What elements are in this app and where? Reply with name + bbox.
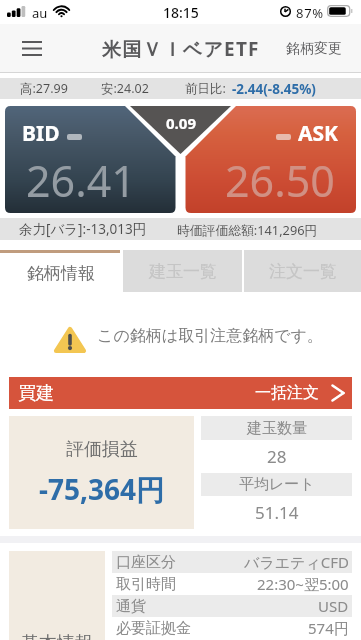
staticText: 銘柄変更 (286, 40, 342, 58)
staticText: 平均レート (239, 475, 315, 494)
staticText: 建玉数量 (247, 419, 307, 438)
staticText: この銘柄は取引注意銘柄です。 (97, 326, 323, 346)
staticText: 18:15 (163, 3, 199, 22)
staticText: 26.50 (225, 151, 335, 210)
staticText: -2.44(-8.45%) (232, 80, 316, 98)
staticText: 0.09 (166, 113, 196, 133)
staticText: au (32, 4, 48, 22)
staticText: 安:24.02 (101, 80, 149, 97)
staticText: 余力[バラ]:-13,013円 (19, 220, 147, 238)
staticText: 建玉一覧 (149, 261, 217, 282)
staticText: 22:30~翌5:00 (257, 574, 349, 594)
button[interactable]: 銘柄情報 (0, 250, 121, 293)
staticText: 87% (296, 4, 324, 22)
staticText: 通貨 (116, 597, 146, 616)
staticText: 米国ＶＩベアETF (102, 36, 260, 62)
staticText: 取引時間 (116, 575, 176, 594)
button[interactable]: Menu (0, 24, 64, 73)
staticText: 買建 (18, 382, 54, 405)
staticText: 一括注文 (255, 383, 319, 403)
staticText: 基本情報 (21, 632, 93, 640)
staticText: 必要証拠金 (116, 619, 191, 638)
staticText: バラエティCFD (244, 552, 349, 572)
staticText: 銘柄情報 (27, 263, 95, 284)
staticText: 26.41 (26, 151, 136, 210)
staticText: ASK (298, 119, 339, 148)
staticText: 前日比: (185, 80, 226, 97)
staticText: -75,364円 (39, 470, 165, 508)
staticText: BID (22, 119, 60, 148)
staticText: 574円 (308, 618, 349, 638)
staticText: 時価評価総額:141,296円 (177, 221, 318, 238)
button[interactable]: 買建 (9, 377, 352, 409)
staticText: USD (318, 596, 349, 616)
staticText: 口座区分 (116, 553, 176, 572)
staticText: 28 (267, 445, 287, 468)
staticText: 高:27.99 (20, 80, 68, 97)
button[interactable]: 注文一覧 (242, 250, 361, 293)
button[interactable]: 建玉一覧 (121, 250, 242, 293)
staticText: 評価損益 (66, 438, 138, 461)
staticText: 注文一覧 (269, 261, 337, 282)
button[interactable]: 銘柄変更 (286, 24, 342, 73)
staticText: 51.14 (255, 501, 299, 524)
